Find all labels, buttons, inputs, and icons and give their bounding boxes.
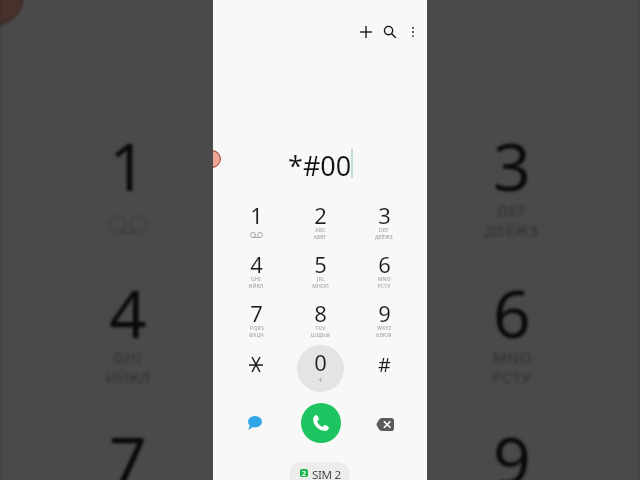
button[interactable]: # [352,347,416,396]
staticText: АБВГ [313,234,327,241]
staticText: 2 [314,200,327,230]
button[interactable]: 2 [288,200,352,249]
button[interactable]: 7 [224,298,288,347]
button[interactable]: 1 [32,120,224,267]
button[interactable]: 9 [352,298,416,347]
staticText: ABC [304,200,336,220]
staticText: ДЕЁЖЗ [485,220,539,240]
button[interactable]: 9 [416,414,608,480]
staticText: # [378,351,391,378]
staticText: MNO [378,276,391,283]
staticText: РСТУ [377,283,391,290]
button[interactable]: Send message [240,408,270,438]
staticText: 6 [493,267,531,357]
button[interactable]: 6 [352,249,416,298]
button[interactable]: Contact [213,150,221,168]
staticText: 1 [109,120,147,210]
button[interactable]: 3 [416,120,608,267]
staticText: ФХЦЧ [249,332,264,339]
staticText: JKL [317,276,325,283]
button[interactable]: Star [224,347,288,396]
button[interactable]: 3 [352,200,416,249]
button[interactable]: 1 [224,200,288,249]
staticText: 9 [493,414,531,480]
button[interactable]: Backspace [370,409,400,439]
button[interactable]: 6 [416,267,608,414]
staticText: ИЙКЛ [248,283,264,290]
staticText: 8 [301,414,339,480]
button[interactable]: 0 [288,347,352,396]
staticText: 1 [250,200,263,230]
staticText: 9 [378,298,391,328]
staticText: 5 [314,249,327,279]
staticText: GHI [251,276,261,283]
staticText: РСТУ [492,367,532,387]
staticText: АБВГ [300,220,340,240]
button[interactable]: 8 [224,414,416,480]
staticText: DEF [379,227,389,234]
button[interactable]: 2 [224,120,416,267]
staticText: 4 [109,267,147,357]
button[interactable]: Call [301,403,341,443]
staticText: 0 [314,347,327,377]
staticText: SIM 2 [312,467,341,480]
staticText: + [318,374,323,385]
staticText: 3 [378,200,391,230]
staticText: 7 [250,298,263,328]
button[interactable]: 4 [32,267,224,414]
staticText: DEF [497,200,527,220]
staticText: 5 [301,267,339,357]
staticText: ИЙКЛ [105,367,151,387]
button[interactable]: 5 [288,249,352,298]
staticText: 6 [378,249,391,279]
staticText: *#00 [225,0,415,63]
staticText: МНОП [312,283,329,290]
staticText: 7 [109,414,147,480]
staticText: 3 [493,120,531,210]
button[interactable]: 8 [288,298,352,347]
staticText: 4 [250,249,263,279]
staticText: ЬЭЮЯ [376,332,392,339]
button[interactable]: 2 [289,462,350,480]
staticText: MNO [493,347,532,367]
button[interactable]: Search [376,18,404,46]
button[interactable]: 7 [32,414,224,480]
staticText: 2 [301,120,339,210]
staticText: 2 [302,469,307,477]
staticText: TUV [315,325,326,332]
button[interactable]: Contact [0,0,23,25]
staticText: 8 [314,298,327,328]
staticText: ДЕЁЖЗ [375,234,393,241]
staticText: JKL [309,347,333,367]
button[interactable]: 5 [224,267,416,414]
staticText: PQRS [250,325,264,332]
staticText: ШЩЪЫ [311,332,330,339]
staticText: WXYZ [377,325,392,332]
button[interactable]: More options [399,18,427,46]
staticText: GHI [113,347,143,367]
button[interactable]: 4 [224,249,288,298]
button[interactable]: Add contact [352,18,380,46]
staticText: ABC [315,227,326,234]
staticText: *#00 [288,147,352,181]
staticText: МНОП [295,367,346,387]
